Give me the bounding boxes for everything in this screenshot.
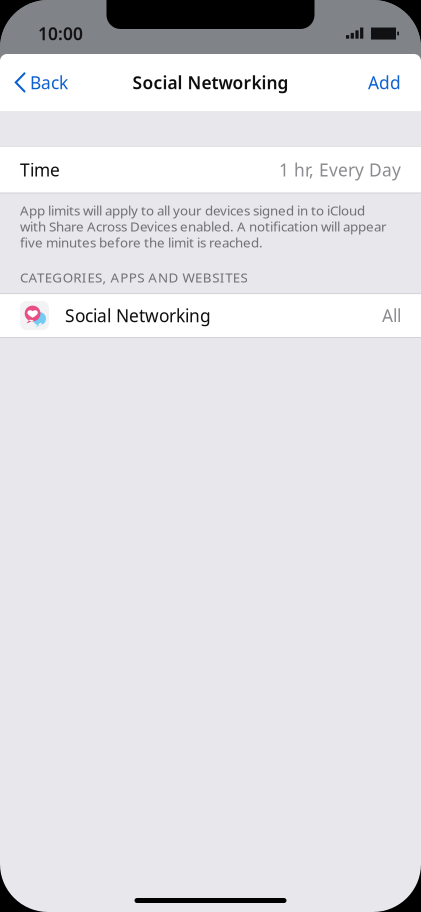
staticText: 10:00 <box>38 22 83 45</box>
button[interactable]: Time <box>0 147 421 193</box>
staticText: Back <box>30 71 68 94</box>
staticText: Social Networking <box>132 71 288 94</box>
staticText: with Share Across Devices enabled. A not… <box>20 217 387 235</box>
button[interactable]: Add <box>368 61 421 104</box>
staticText: Social Networking <box>65 304 211 327</box>
staticText: All <box>382 304 401 327</box>
button[interactable]: Social Networking <box>0 294 421 337</box>
staticText: CATEGORIES, APPS AND WEBSITES <box>20 268 247 286</box>
staticText: five minutes before the limit is reached… <box>20 233 263 251</box>
staticText: 1 hr, Every Day <box>279 158 401 181</box>
staticText: App limits will apply to all your device… <box>20 201 365 219</box>
staticText: Time <box>20 158 60 181</box>
staticText: Add <box>368 71 401 94</box>
button[interactable]: Back <box>0 61 68 104</box>
